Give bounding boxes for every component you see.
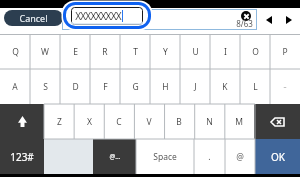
button[interactable]: W <box>30 34 60 69</box>
staticText: I <box>224 46 227 58</box>
button[interactable]: F <box>90 69 120 104</box>
staticText: J <box>194 81 197 93</box>
staticText: Space <box>153 151 177 163</box>
button[interactable]: U <box>180 34 210 69</box>
staticText: XXXXXXXXX <box>75 9 121 23</box>
button[interactable]: Email shortcuts <box>93 139 136 174</box>
button[interactable]: Next field <box>278 9 299 30</box>
staticText: – <box>283 83 287 91</box>
button[interactable]: K <box>210 69 240 104</box>
staticText: E <box>73 46 78 58</box>
staticText: G <box>132 81 139 93</box>
button[interactable]: Z <box>44 104 74 139</box>
staticText: F <box>103 81 108 93</box>
button[interactable]: X <box>74 104 104 139</box>
staticText: P <box>282 46 288 58</box>
button[interactable]: Shift <box>0 104 44 139</box>
button[interactable]: Previous field <box>258 9 279 30</box>
staticText: R <box>102 46 108 58</box>
button[interactable]: B <box>164 104 194 139</box>
button[interactable]: M <box>224 104 254 139</box>
button[interactable]: S <box>30 69 60 104</box>
button[interactable]: @ <box>225 139 255 174</box>
staticText: T <box>133 46 138 58</box>
button[interactable]: H <box>150 69 180 104</box>
button[interactable]: N <box>194 104 224 139</box>
staticText: @ <box>236 151 244 163</box>
button[interactable]: Cancel <box>4 10 63 26</box>
button[interactable]: XXXXXXXXX <box>71 7 143 25</box>
staticText: V <box>146 116 152 128</box>
staticText: L <box>253 81 258 93</box>
staticText: OK <box>271 150 285 164</box>
button[interactable]: O <box>240 34 270 69</box>
button[interactable]: Y <box>150 34 180 69</box>
staticText: O <box>252 46 259 58</box>
staticText: @... <box>109 152 121 161</box>
staticText: S <box>43 81 48 93</box>
button[interactable]: P <box>270 34 300 69</box>
staticText: C <box>116 116 122 128</box>
staticText: Q <box>12 46 19 58</box>
staticText: Z <box>57 116 62 128</box>
button[interactable]: C <box>104 104 134 139</box>
staticText: M <box>235 116 243 128</box>
button[interactable]: J <box>180 69 210 104</box>
button[interactable]: Keyboard options <box>44 139 93 174</box>
staticText: . <box>208 151 211 163</box>
button[interactable]: V <box>134 104 164 139</box>
button[interactable]: T <box>120 34 150 69</box>
staticText: Cancel <box>19 12 48 24</box>
staticText: D <box>72 81 79 93</box>
staticText: K <box>222 81 228 93</box>
button[interactable]: A <box>0 69 30 104</box>
button[interactable]: Clear text <box>236 9 254 30</box>
button[interactable]: E <box>60 34 90 69</box>
button[interactable]: 123# <box>0 139 44 174</box>
staticText: B <box>176 116 182 128</box>
staticText: Y <box>163 46 168 58</box>
staticText: N <box>206 116 213 128</box>
button[interactable]: . <box>194 139 225 174</box>
staticText: X <box>87 116 92 128</box>
staticText: W <box>41 46 49 58</box>
staticText: U <box>192 46 199 58</box>
staticText: 123# <box>10 150 34 164</box>
button[interactable]: Q <box>0 34 30 69</box>
button[interactable]: G <box>120 69 150 104</box>
button[interactable]: – <box>270 69 300 104</box>
button[interactable]: D <box>60 69 90 104</box>
button[interactable]: OK <box>255 139 300 174</box>
staticText: 8/63 <box>236 18 253 29</box>
button[interactable]: L <box>240 69 270 104</box>
button[interactable]: R <box>90 34 120 69</box>
button[interactable]: Space <box>136 139 194 174</box>
staticText: H <box>162 81 169 93</box>
staticText: A <box>12 81 18 93</box>
button[interactable]: Backspace <box>254 104 300 139</box>
button[interactable]: I <box>210 34 240 69</box>
